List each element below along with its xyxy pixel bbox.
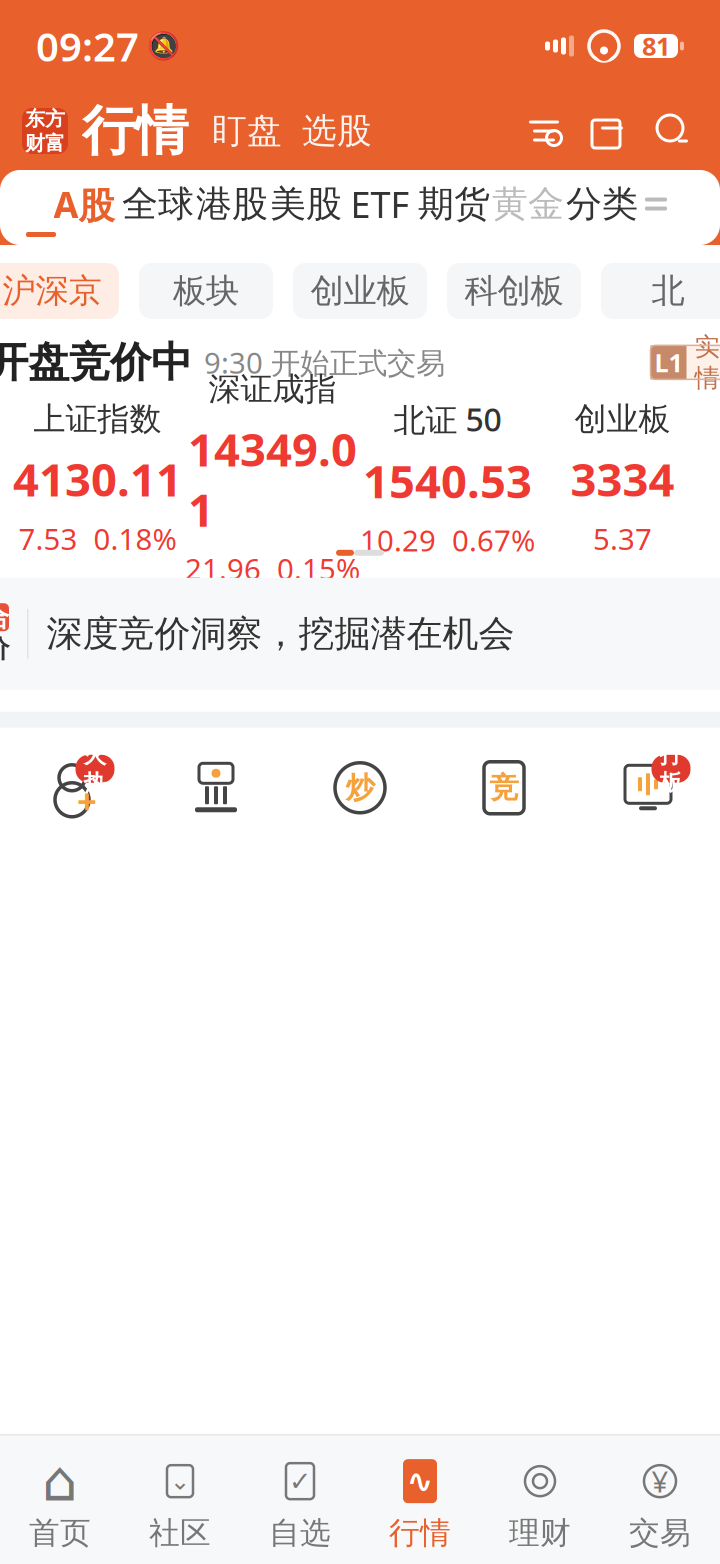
staticText: 5.37 [593,519,652,558]
staticText: 0.15% [277,549,360,588]
button[interactable]: 创业板 [293,263,427,319]
button[interactable]: 分类 [565,182,639,226]
staticText: 打板 [659,741,682,797]
staticText: 0.67% [452,521,535,560]
button[interactable]: 北证 50 [360,414,535,544]
button[interactable]: 集合 [0,578,720,712]
staticText: 81 [642,29,670,63]
staticText: 10.29 [360,521,436,560]
staticText: 创业板 [574,399,670,439]
button[interactable]: 北 [601,263,720,319]
button[interactable]: 选股 [292,104,382,158]
staticText: 盯盘 [212,110,282,152]
staticText: 理财 [509,1514,571,1552]
staticText: 沪深京 [2,270,101,311]
staticText: 涨 2979 家 [0,1466,116,1509]
staticText: ⌂ [42,1449,78,1513]
button[interactable]: 创业板 [535,414,710,544]
staticText: 竞 [489,770,518,806]
staticText: -- -- [585,1535,641,1564]
staticText: 深度竞价洞察，挖掘潜在机会 [46,612,514,656]
button[interactable]: 港股 [195,182,269,226]
staticText: + [77,778,97,824]
button[interactable]: A股 [47,182,121,226]
button[interactable]: 沪深京 [0,263,119,319]
staticText: 集合 [0,602,9,633]
button[interactable]: ⌂ [0,1453,120,1557]
staticText: 选股 [302,110,372,152]
staticText: 7.53 [18,519,77,558]
staticText: ✓ [289,1466,311,1496]
button[interactable]: ETF [343,182,417,226]
staticText: 期货 [418,182,490,226]
button[interactable]: 分享 [584,106,634,156]
button[interactable]: 打板 [576,752,720,877]
staticText: 三市成交总额 [0,1536,131,1564]
button[interactable]: 板块 [139,263,273,319]
staticText: ⌄ [170,1467,190,1495]
staticText: 跌 1570 家 [604,1466,720,1509]
staticText: 上证指数 [33,399,161,439]
staticText: 首页 [29,1514,91,1552]
staticText: 1-0% [255,1400,316,1435]
button[interactable]: 深证成指 [185,414,360,544]
button[interactable]: ✓ [240,1453,360,1557]
button[interactable]: ¥ [600,1453,720,1557]
staticText: 财富 [25,131,65,156]
button[interactable]: ⌄ [120,1453,240,1557]
staticText: 0.18% [93,519,176,558]
button[interactable]: 盯盘 [202,104,292,158]
button[interactable]: 自选设置 [518,107,570,155]
staticText: 4130.11 [13,449,182,509]
button[interactable]: 期货 [417,182,491,226]
button[interactable]: 全球 [121,182,195,226]
staticText: 分类 [566,182,638,226]
button[interactable]: 上证指数 [10,414,185,544]
staticText: 北 [651,270,684,311]
staticText: 板块 [173,270,239,311]
staticText: 东方 [25,106,65,131]
button[interactable]: + [0,752,144,877]
button[interactable]: 全部分类 [639,184,673,224]
button[interactable]: 搜索 [648,106,698,156]
button[interactable]: 炒 [288,752,432,877]
staticText: 自选 [269,1514,331,1552]
button[interactable]: 科创板 [447,263,581,319]
staticText: A股 [53,180,114,228]
button[interactable]: 竞 [432,752,576,877]
button[interactable]: 美联储 [144,752,288,877]
staticText: 深证成指 [208,369,336,409]
staticText: 火热 [83,741,106,797]
staticText: 1540.53 [363,450,532,511]
staticText: 社区 [149,1514,211,1552]
staticText: L1 [654,346,682,379]
button[interactable]: 黄金 [491,182,565,226]
staticText: -- [143,1535,163,1564]
button[interactable]: 理财 [480,1453,600,1557]
button[interactable]: 美股 [269,182,343,226]
staticText: 创业板 [310,270,409,311]
button[interactable]: ∿ [360,1453,480,1557]
